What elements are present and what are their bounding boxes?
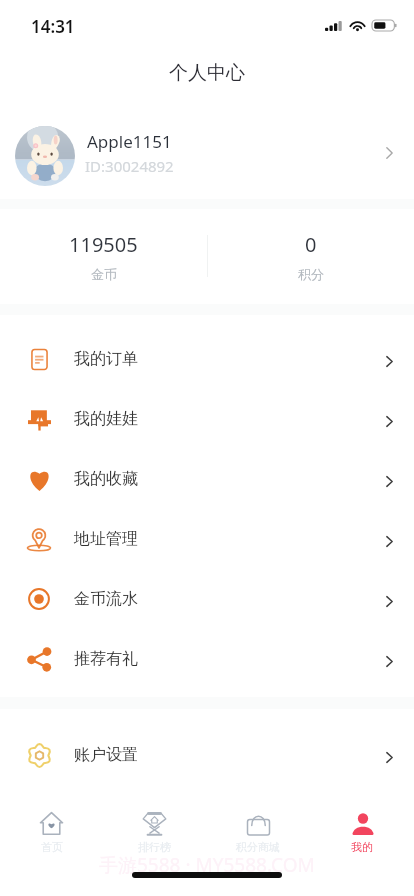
staticText: 我的订单 [74,349,138,369]
staticText: 0 [305,231,317,258]
button[interactable]: 账户设置 [0,725,414,785]
button[interactable]: 金币流水 [0,569,414,629]
staticText: Apple1151 [87,130,172,153]
staticText: 个人中心 [169,61,245,85]
button[interactable]: 排行榜 [103,809,206,854]
staticText: 手游5588 · MY5588.COM [99,852,315,878]
staticText: 我的娃娃 [74,409,138,429]
staticText: 排行榜 [138,840,171,854]
staticText: 14:31 [31,15,75,38]
staticText: 推荐有礼 [74,649,138,669]
staticText: 积分 [298,266,324,282]
staticText: ID:30024892 [85,156,174,176]
staticText: 金币 [91,266,117,282]
staticText: 我的收藏 [74,469,138,489]
button[interactable]: 推荐有礼 [0,629,414,689]
staticText: 账户设置 [74,745,138,765]
button[interactable]: 积分商城 [206,809,310,854]
staticText: 积分商城 [236,840,280,854]
staticText: 119505 [69,231,138,258]
button[interactable]: 我的 [310,809,414,854]
staticText: 地址管理 [74,529,138,549]
button[interactable]: 首页 [0,809,103,854]
button[interactable]: 119505 [0,209,207,304]
button[interactable]: 地址管理 [0,509,414,569]
button[interactable]: 我的娃娃 [0,389,414,449]
button[interactable]: 0 [207,209,414,304]
staticText: 我的 [351,840,373,854]
button[interactable]: 我的订单 [0,329,414,389]
staticText: 首页 [41,840,63,854]
button[interactable]: Apple1151 [0,96,414,199]
button[interactable]: 我的收藏 [0,449,414,509]
staticText: 金币流水 [74,589,138,609]
